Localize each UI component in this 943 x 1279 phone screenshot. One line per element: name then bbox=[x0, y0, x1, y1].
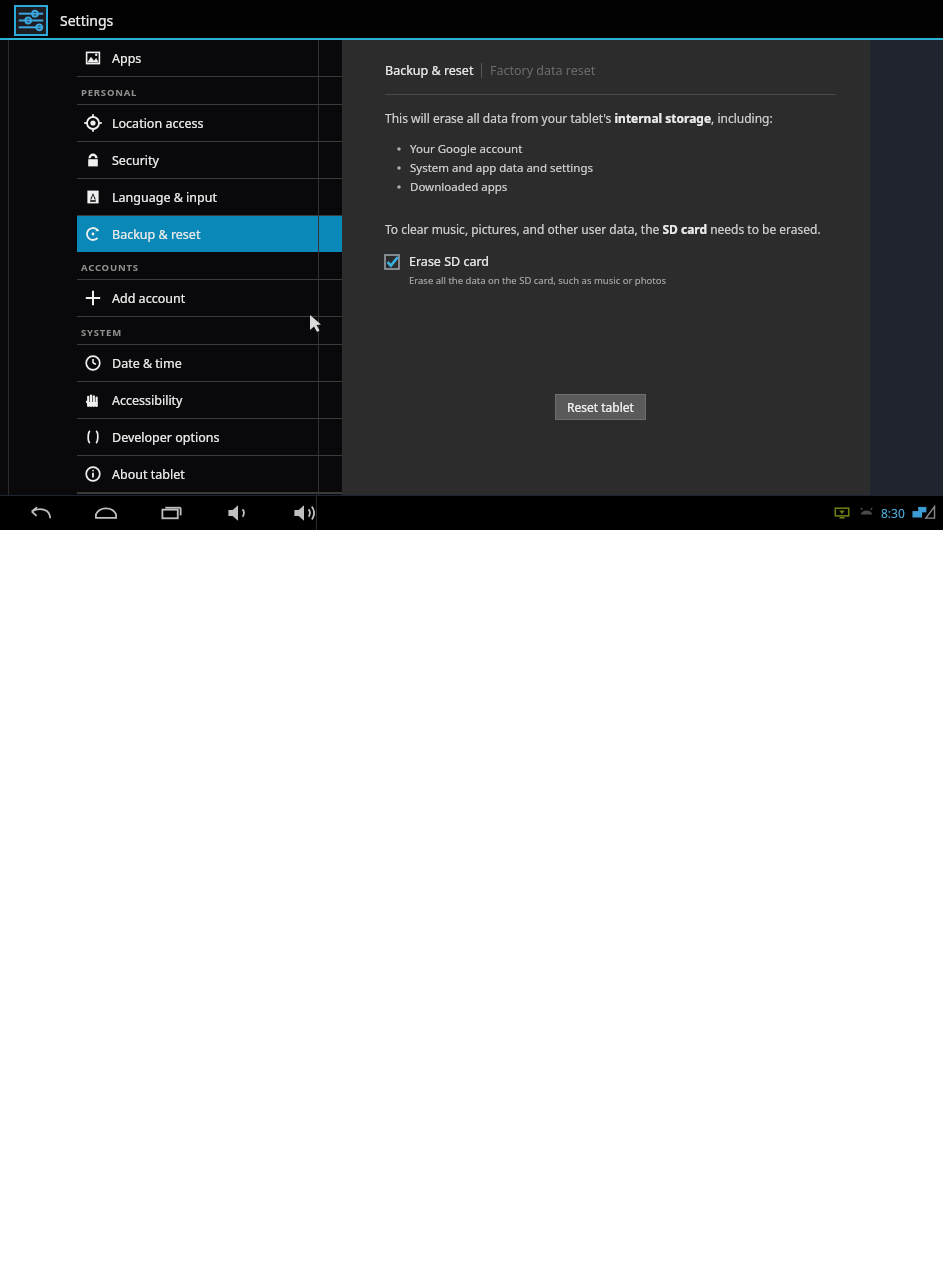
button[interactable]: Factory data reset bbox=[482, 62, 596, 79]
button[interactable]: Date & time bbox=[77, 345, 342, 381]
staticText: Accessibility bbox=[112, 392, 183, 409]
staticText: Backup & reset bbox=[112, 226, 201, 243]
button[interactable]: Add account bbox=[77, 280, 342, 316]
staticText: Reset tablet bbox=[567, 399, 634, 415]
staticText: System and app data and settings bbox=[410, 160, 593, 176]
button[interactable]: Back bbox=[22, 498, 58, 528]
staticText: To clear music, pictures, and other user… bbox=[385, 221, 821, 237]
staticText: This will erase all data from your table… bbox=[385, 110, 773, 126]
staticText: PERSONAL bbox=[81, 86, 138, 99]
button[interactable]: Security bbox=[77, 142, 342, 178]
button[interactable]: Volume up bbox=[286, 498, 322, 528]
staticText: Erase SD card bbox=[409, 253, 490, 270]
staticText: Settings bbox=[60, 11, 114, 30]
button[interactable]: Backup & reset bbox=[385, 62, 481, 79]
staticText: SYSTEM bbox=[81, 326, 122, 339]
staticText: Your Google account bbox=[410, 141, 523, 157]
button[interactable]: Volume down bbox=[220, 498, 256, 528]
staticText: Downloaded apps bbox=[410, 179, 508, 195]
button[interactable]: Developer options bbox=[77, 419, 342, 455]
button[interactable]: Apps bbox=[77, 40, 342, 76]
staticText: Developer options bbox=[112, 429, 220, 446]
button[interactable]: Home bbox=[88, 498, 124, 528]
button[interactable]: Settings app icon bbox=[14, 5, 48, 36]
button[interactable]: Recent apps bbox=[154, 498, 190, 528]
staticText: Location access bbox=[112, 115, 204, 132]
staticText: Add account bbox=[112, 290, 186, 307]
staticText: Erase all the data on the SD card, such … bbox=[409, 274, 667, 287]
button[interactable]: Location access bbox=[77, 105, 342, 141]
button[interactable]: Reset tablet bbox=[555, 394, 646, 420]
button[interactable]: Language & input bbox=[77, 179, 342, 215]
button[interactable]: Backup & reset bbox=[77, 216, 342, 252]
staticText: ACCOUNTS bbox=[81, 261, 139, 274]
staticText: About tablet bbox=[112, 466, 185, 483]
staticText: Language & input bbox=[112, 189, 217, 206]
staticText: Security bbox=[112, 152, 159, 169]
button[interactable]: Accessibility bbox=[77, 382, 342, 418]
staticText: Apps bbox=[112, 50, 142, 67]
staticText: Backup & reset bbox=[385, 62, 474, 79]
staticText: Date & time bbox=[112, 355, 182, 372]
button[interactable]: Erase SD card bbox=[385, 251, 667, 289]
button[interactable]: About tablet bbox=[77, 456, 342, 492]
staticText: 8:30 bbox=[881, 505, 905, 521]
staticText: Factory data reset bbox=[490, 62, 596, 79]
